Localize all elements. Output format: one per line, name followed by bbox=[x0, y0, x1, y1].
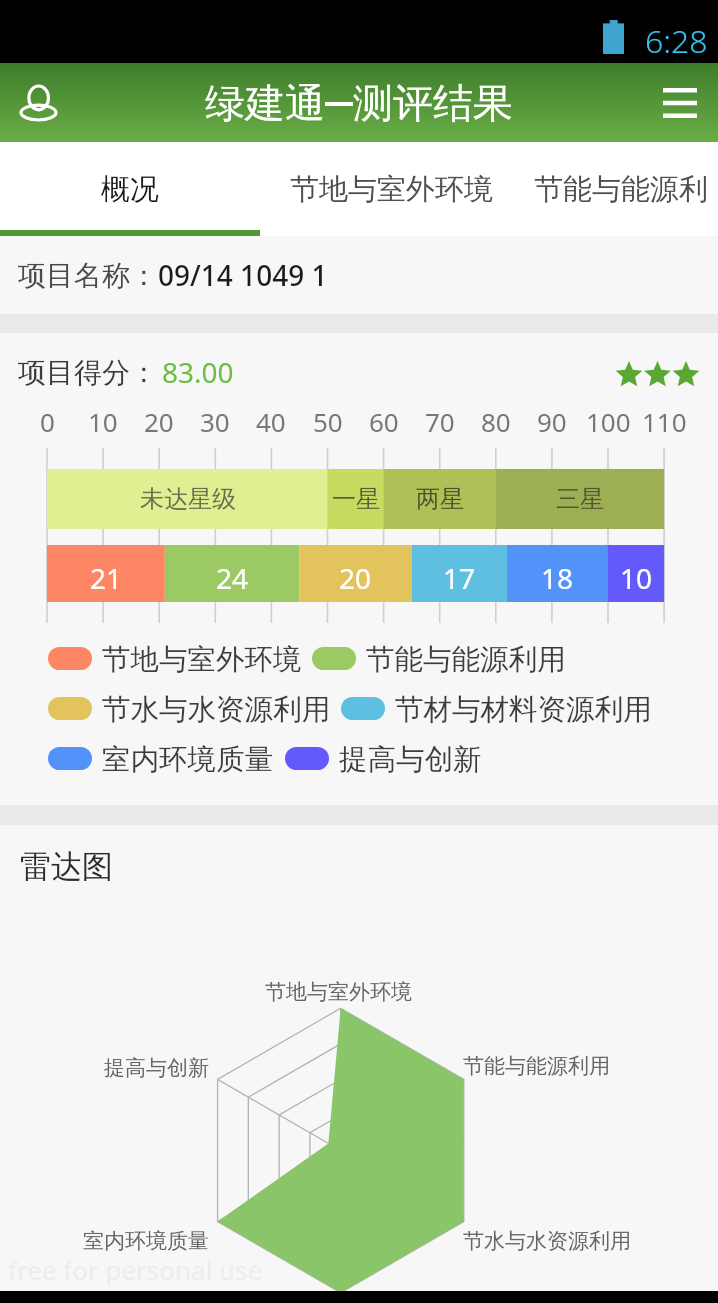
button[interactable]: 节地与室外环境 bbox=[260, 142, 523, 236]
staticText: 概况 bbox=[101, 171, 159, 208]
staticText: 100 bbox=[586, 404, 631, 439]
staticText: 20 bbox=[144, 404, 174, 439]
staticText: 10 bbox=[620, 559, 653, 597]
staticText: 室内环境质量 bbox=[83, 1228, 209, 1254]
staticText: 30 bbox=[200, 404, 230, 439]
staticText: 节能与能源利 bbox=[534, 171, 708, 208]
staticText: 节水与水资源利用 bbox=[463, 1228, 631, 1254]
staticText: 6:28 bbox=[645, 19, 708, 63]
staticText: 09/14 1049 1 bbox=[158, 256, 328, 294]
staticText: 节地与室外环境 bbox=[102, 642, 302, 674]
staticText: 17 bbox=[443, 559, 476, 597]
staticText: 节地与室外环境 bbox=[265, 979, 412, 1005]
staticText: 80 bbox=[481, 404, 511, 439]
staticText: 0 bbox=[40, 404, 55, 439]
staticText: 测评结果 bbox=[353, 78, 513, 128]
staticText: 项目得分： bbox=[18, 355, 158, 390]
button[interactable]: 概况 bbox=[0, 142, 260, 236]
staticText: 一星 bbox=[332, 484, 380, 514]
staticText: 24 bbox=[216, 559, 249, 597]
staticText: 40 bbox=[256, 404, 286, 439]
staticText: free for personal use bbox=[8, 1252, 263, 1287]
button[interactable]: Menu bbox=[652, 75, 708, 131]
staticText: 项目名称： bbox=[18, 258, 158, 293]
staticText: 室内环境质量 bbox=[102, 742, 273, 774]
staticText: 110 bbox=[642, 404, 687, 439]
staticText: 90 bbox=[537, 404, 567, 439]
staticText: 60 bbox=[369, 404, 399, 439]
staticText: 50 bbox=[313, 404, 343, 439]
staticText: 21 bbox=[90, 559, 123, 597]
staticText: 节水与水资源利用 bbox=[102, 692, 330, 724]
staticText: 70 bbox=[425, 404, 455, 439]
staticText: 10 bbox=[88, 404, 118, 439]
staticText: 节能与能源利用 bbox=[366, 642, 566, 674]
staticText: 绿建通 bbox=[205, 78, 325, 128]
staticText: 20 bbox=[339, 559, 372, 597]
staticText: 提高与创新 bbox=[104, 1055, 209, 1081]
button[interactable]: 节能与能源利 bbox=[523, 142, 718, 236]
staticText: 83.00 bbox=[162, 353, 234, 391]
staticText: 三星 bbox=[556, 484, 604, 514]
staticText: 节材与材料资源利用 bbox=[395, 692, 652, 724]
staticText: 18 bbox=[541, 559, 574, 597]
staticText: 节地与室外环境 bbox=[290, 171, 493, 208]
button[interactable]: Account bbox=[10, 75, 66, 131]
staticText: 未达星级 bbox=[140, 484, 236, 514]
staticText: 提高与创新 bbox=[339, 742, 482, 774]
staticText: 节能与能源利用 bbox=[463, 1053, 610, 1079]
staticText: 雷达图 bbox=[20, 847, 113, 886]
staticText: 两星 bbox=[416, 484, 464, 514]
